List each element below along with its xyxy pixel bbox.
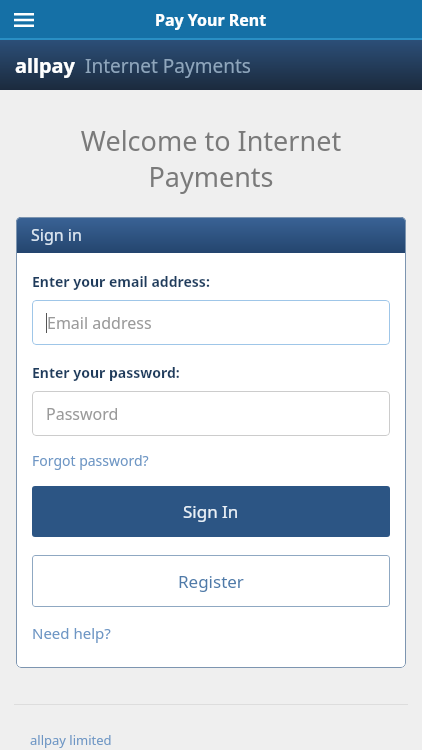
button[interactable]: Password — [32, 391, 390, 436]
staticText: allpay — [15, 52, 75, 79]
button[interactable]: Register — [32, 555, 390, 607]
staticText: Password — [46, 403, 119, 425]
staticText: Internet Payments — [85, 53, 251, 79]
staticText: Sign In — [183, 500, 239, 523]
staticText: allpay limited — [30, 731, 112, 749]
staticText: Enter your password: — [32, 363, 180, 382]
button[interactable]: Sign In — [32, 486, 390, 537]
staticText: Pay Your Rent — [155, 9, 267, 31]
button[interactable]: Email address — [32, 300, 390, 345]
staticText: Register — [178, 570, 244, 593]
button[interactable]: Forgot password? — [32, 451, 149, 470]
staticText: Welcome to Internet Payments — [24, 122, 398, 195]
staticText: Sign in — [31, 224, 82, 246]
button[interactable]: Need help? — [32, 623, 111, 643]
button[interactable]: Menu — [6, 2, 42, 38]
staticText: Email address — [47, 312, 152, 334]
staticText: Enter your email address: — [32, 272, 210, 291]
